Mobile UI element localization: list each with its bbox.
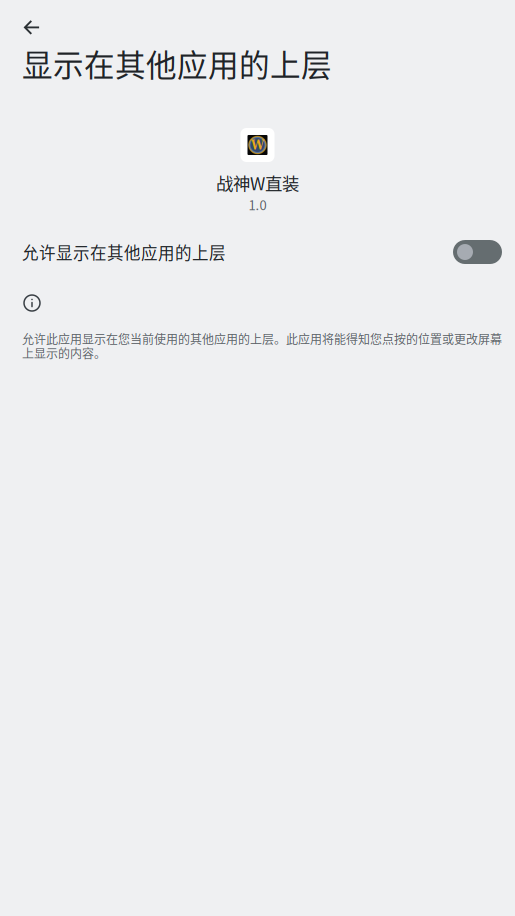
staticText: 允许显示在其他应用的上层 bbox=[22, 240, 226, 264]
button[interactable]: 允许显示在其他应用的上层 bbox=[0, 228, 515, 276]
staticText: 1.0 bbox=[248, 195, 266, 214]
staticText: 显示在其他应用的上层 bbox=[22, 41, 332, 85]
staticText: 战神W直装 bbox=[216, 170, 299, 195]
staticText: 允许此应用显示在您当前使用的其他应用的上层。此应用将能得知您点按的位置或更改屏幕… bbox=[22, 330, 502, 362]
staticText: W bbox=[251, 137, 264, 153]
button[interactable]: Back bbox=[0, 0, 57, 41]
